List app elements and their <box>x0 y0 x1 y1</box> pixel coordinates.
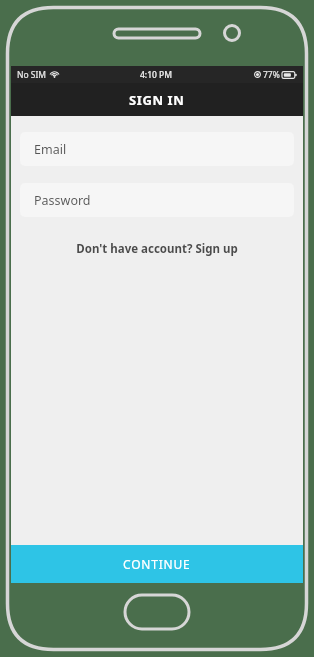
staticText: Password <box>34 192 91 209</box>
staticText: 77% <box>263 69 280 81</box>
staticText: CONTINUE <box>123 556 191 572</box>
button[interactable]: Password <box>20 183 294 217</box>
button[interactable]: CONTINUE <box>11 545 303 583</box>
staticText: No SIM <box>17 69 47 81</box>
staticText: Email <box>34 141 67 158</box>
button[interactable]: Email <box>20 132 294 166</box>
staticText: 4:10 PM <box>140 69 173 81</box>
staticText: Don't have account? Sign up <box>76 241 238 257</box>
staticText: SIGN IN <box>129 91 185 109</box>
button[interactable]: Don't have account? Sign up <box>72 239 242 259</box>
